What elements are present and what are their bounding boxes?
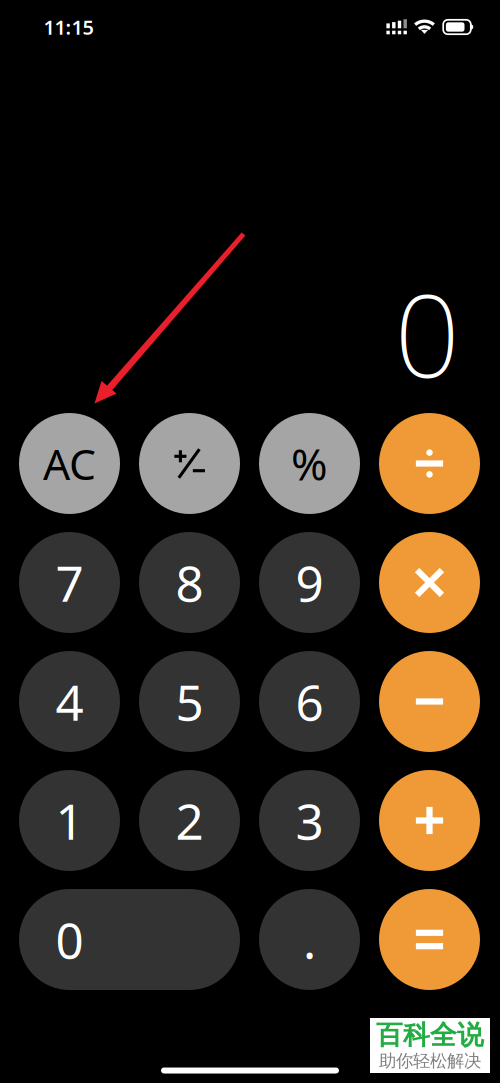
button[interactable]: 5: [139, 651, 240, 752]
staticText: 2: [175, 788, 203, 853]
staticText: 百科全说: [376, 1019, 484, 1051]
staticText: 助你轻松解决: [379, 1050, 481, 1072]
staticText: 9: [295, 550, 323, 615]
button[interactable]: 8: [139, 532, 240, 633]
button[interactable]: Equals: [379, 889, 480, 990]
staticText: 0: [55, 907, 83, 972]
button[interactable]: 4: [19, 651, 120, 752]
button[interactable]: Divide: [379, 413, 480, 514]
staticText: 6: [295, 669, 323, 734]
button[interactable]: AC: [19, 413, 120, 514]
staticText: 7: [55, 550, 83, 615]
button[interactable]: .: [259, 889, 360, 990]
staticText: 0: [394, 257, 459, 409]
button[interactable]: 3: [259, 770, 360, 871]
staticText: .: [303, 907, 316, 972]
button[interactable]: 6: [259, 651, 360, 752]
button[interactable]: 2: [139, 770, 240, 871]
button[interactable]: 9: [259, 532, 360, 633]
button[interactable]: Plus minus: [139, 413, 240, 514]
staticText: 11:15: [43, 14, 93, 40]
staticText: 4: [55, 669, 83, 734]
button[interactable]: Multiply: [379, 532, 480, 633]
staticText: 8: [175, 550, 203, 615]
staticText: 3: [295, 788, 323, 853]
button[interactable]: 0: [19, 889, 240, 990]
staticText: AC: [43, 435, 96, 492]
staticText: 1: [55, 788, 83, 853]
button[interactable]: %: [259, 413, 360, 514]
button[interactable]: Add: [379, 770, 480, 871]
staticText: %: [291, 434, 328, 493]
button[interactable]: 7: [19, 532, 120, 633]
button[interactable]: 1: [19, 770, 120, 871]
button[interactable]: Subtract: [379, 651, 480, 752]
staticText: 5: [175, 669, 203, 734]
